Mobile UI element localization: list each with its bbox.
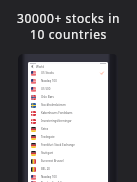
button[interactable]: Investeringsföreningar: [28, 117, 108, 125]
staticText: Nasdaq 100: [41, 79, 57, 83]
button[interactable]: Tradegate: [28, 133, 108, 141]
staticText: Nasdaq 100: [41, 175, 57, 179]
staticText: BEL 20: [41, 167, 50, 171]
button[interactable]: Nasdaq 100: [28, 77, 108, 85]
button[interactable]: Nasdaq Small Cap: [28, 181, 108, 182]
staticText: 30000+ stocks in 10 countries: [17, 10, 120, 42]
staticText: Nasdaq Small Cap: [41, 181, 66, 182]
button[interactable]: BEL 20: [28, 165, 108, 173]
staticText: Euronext Brussel: [41, 159, 64, 163]
button[interactable]: Euronext Brussel: [28, 157, 108, 165]
button[interactable]: Københavns Fondsbørs: [28, 109, 108, 117]
staticText: Frankfurt Stock Exchange: [41, 143, 75, 147]
staticText: Københavns Fondsbørs: [41, 111, 73, 115]
other: Back: [31, 65, 34, 68]
button[interactable]: Frankfurt Stock Exchange: [28, 141, 108, 149]
staticText: US 500: [41, 87, 51, 91]
button[interactable]: Stuttgart: [28, 149, 108, 157]
staticText: Tradegate: [41, 135, 55, 139]
staticText: Stuttgart: [41, 151, 53, 155]
button[interactable]: Stockholmsbörsen: [28, 101, 108, 109]
staticText: Oslo Børs: [41, 95, 54, 99]
button[interactable]: Xetra: [28, 125, 108, 133]
button[interactable]: US Stocks: [28, 69, 108, 77]
button[interactable]: US 500: [28, 85, 108, 93]
staticText: Xetra: [41, 127, 49, 131]
staticText: Investeringsföreningar: [41, 119, 72, 123]
button[interactable]: Back: [28, 64, 108, 69]
staticText: World: [36, 65, 45, 69]
staticText: US Stocks: [41, 71, 54, 75]
button[interactable]: Nasdaq 100: [28, 173, 108, 181]
staticText: Stockholmsbörsen: [41, 103, 66, 107]
button[interactable]: Oslo Børs: [28, 93, 108, 101]
